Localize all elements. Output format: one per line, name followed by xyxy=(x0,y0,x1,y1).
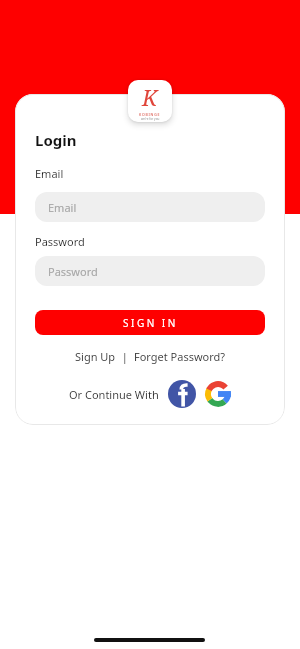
button[interactable] xyxy=(204,380,232,408)
staticText: Login xyxy=(35,130,77,150)
staticText: K xyxy=(142,82,158,112)
staticText: Password xyxy=(48,264,98,279)
staticText: | xyxy=(116,349,134,364)
button[interactable]: Forget Password? xyxy=(134,349,226,364)
staticText: Or Continue With xyxy=(69,387,159,402)
staticText: Password xyxy=(35,234,85,249)
button[interactable]: Sign Up xyxy=(75,349,116,364)
staticText: we're for you xyxy=(141,117,160,121)
staticText: SIGN IN xyxy=(123,316,178,330)
button[interactable]: SIGN IN xyxy=(35,310,265,335)
button[interactable]: Email xyxy=(35,192,265,222)
button[interactable] xyxy=(168,380,196,408)
staticText: Email xyxy=(35,166,64,181)
staticText: Email xyxy=(48,200,77,215)
staticText: KOBINGE xyxy=(139,112,161,117)
button[interactable]: Password xyxy=(35,256,265,286)
